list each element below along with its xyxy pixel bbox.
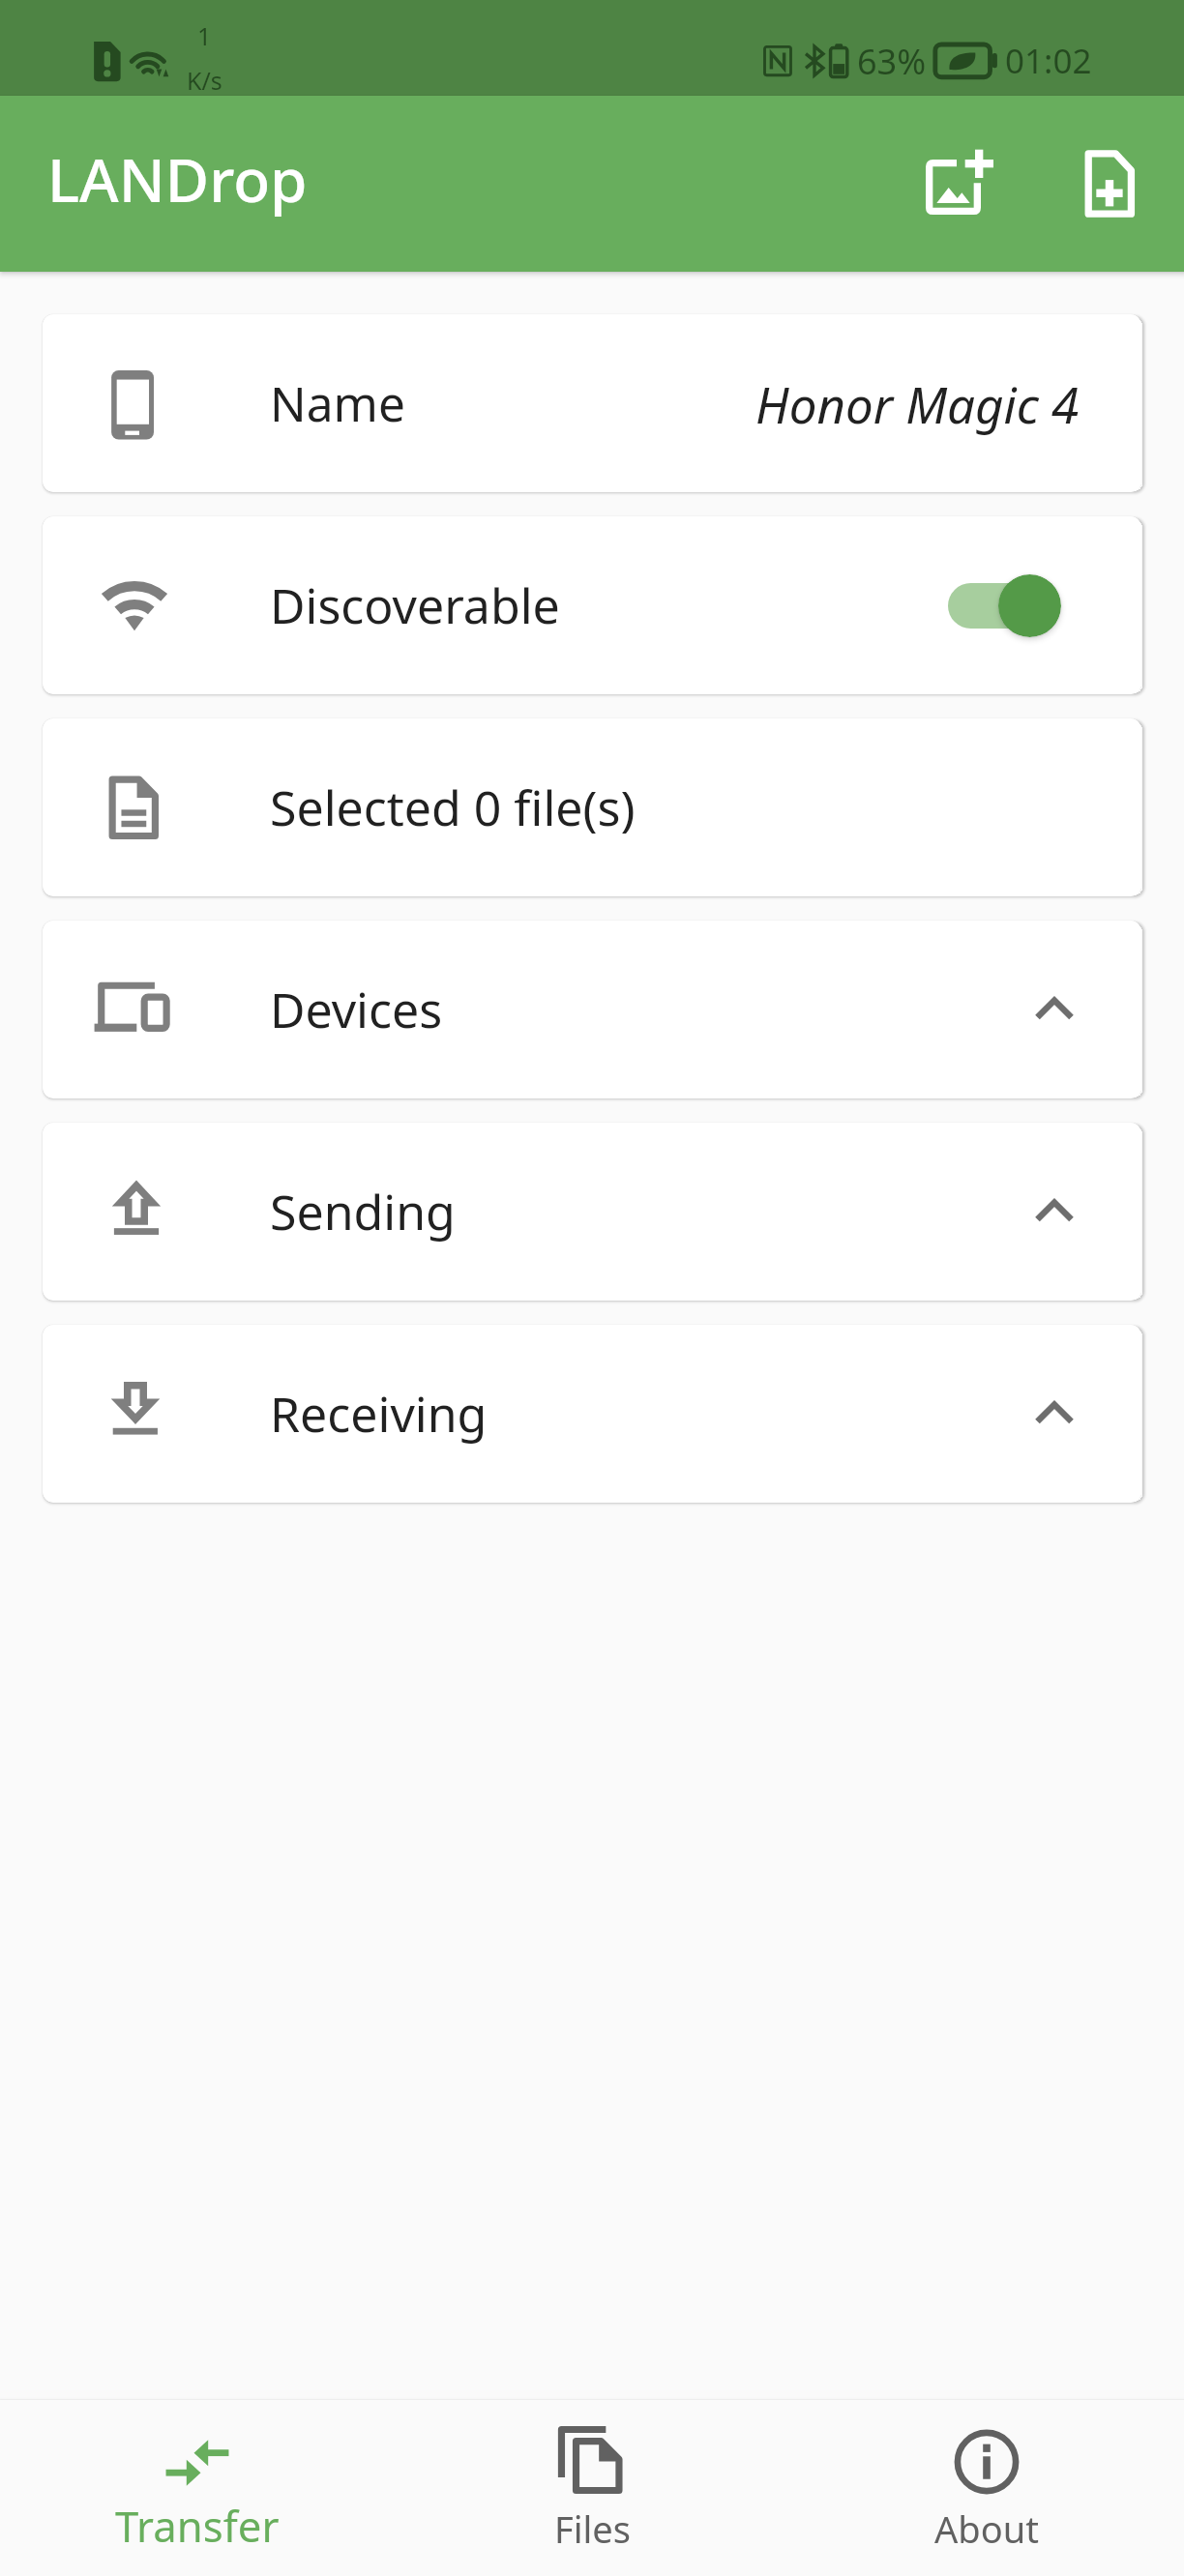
staticText: LANDrop bbox=[47, 138, 308, 220]
button[interactable]: Devices bbox=[43, 921, 1141, 1098]
button[interactable]: About bbox=[789, 2400, 1184, 2576]
staticText: 63% bbox=[857, 38, 927, 85]
staticText: Devices bbox=[270, 977, 443, 1042]
button[interactable]: Collapse Devices bbox=[1008, 963, 1101, 1056]
button[interactable]: Sending bbox=[43, 1123, 1141, 1301]
staticText: 01:02 bbox=[1005, 38, 1092, 84]
button[interactable]: Discoverable bbox=[43, 516, 1141, 694]
staticText: About bbox=[934, 2503, 1039, 2554]
staticText: Name bbox=[270, 370, 405, 436]
staticText: Honor Magic 4 bbox=[755, 370, 1080, 437]
button[interactable]: Send images bbox=[897, 120, 1024, 248]
staticText: 1 bbox=[197, 19, 212, 52]
button[interactable]: Files bbox=[395, 2400, 789, 2576]
staticText: Transfer bbox=[115, 2497, 280, 2555]
button[interactable]: Collapse Sending bbox=[1008, 1165, 1101, 1258]
staticText: K/s bbox=[187, 64, 222, 97]
button[interactable]: Selected 0 file(s) bbox=[43, 718, 1141, 896]
staticText: Discoverable bbox=[270, 572, 560, 638]
button[interactable]: Receiving bbox=[43, 1325, 1141, 1503]
staticText: Selected 0 file(s) bbox=[270, 775, 636, 840]
staticText: Receiving bbox=[270, 1381, 488, 1447]
staticText: Files bbox=[554, 2503, 631, 2554]
button[interactable]: Name bbox=[43, 314, 1141, 492]
button[interactable]: Transfer bbox=[0, 2400, 395, 2576]
button[interactable]: Send files bbox=[1046, 120, 1173, 248]
button[interactable]: Collapse Receiving bbox=[1008, 1367, 1101, 1460]
button[interactable]: Discoverable toggle bbox=[947, 564, 1063, 647]
staticText: Sending bbox=[270, 1179, 456, 1244]
